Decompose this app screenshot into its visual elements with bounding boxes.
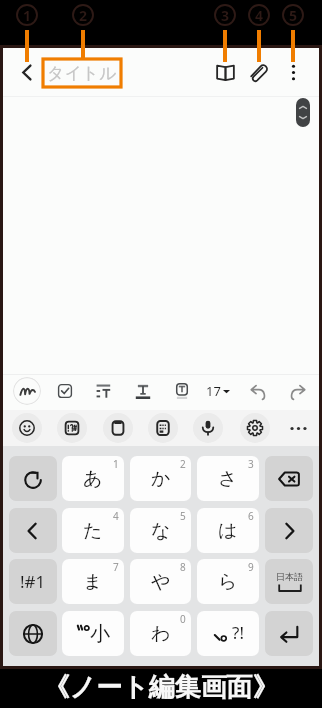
staticText: は bbox=[218, 519, 238, 543]
staticText: わ bbox=[151, 622, 171, 646]
staticText: ま bbox=[83, 570, 103, 594]
button[interactable]: Checklist bbox=[51, 377, 79, 405]
button[interactable]: Clipboard bbox=[103, 413, 133, 443]
staticText: ら bbox=[218, 570, 238, 594]
staticText: 7 bbox=[113, 560, 119, 574]
button[interactable]: del bbox=[265, 456, 313, 501]
staticText: 0 bbox=[180, 612, 186, 626]
staticText: 3 bbox=[221, 6, 230, 25]
button[interactable]: あ bbox=[62, 456, 124, 501]
button[interactable]: や bbox=[130, 559, 191, 604]
staticText: 1 bbox=[23, 6, 32, 25]
button[interactable]: な bbox=[130, 508, 191, 553]
staticText: 《ノート編集画面》 bbox=[43, 671, 279, 701]
button[interactable]: right bbox=[265, 508, 313, 553]
button[interactable]: Dictionary bbox=[208, 55, 242, 89]
staticText: 5 bbox=[180, 509, 186, 523]
button[interactable]: Settings bbox=[240, 413, 270, 443]
staticText: 2 bbox=[180, 457, 186, 471]
button[interactable]: More options bbox=[276, 55, 310, 89]
staticText: !#1 bbox=[20, 570, 46, 593]
staticText: 9 bbox=[248, 560, 254, 574]
staticText: な bbox=[151, 519, 171, 543]
staticText: 1 bbox=[113, 457, 119, 471]
button[interactable]: Back bbox=[9, 54, 45, 90]
button[interactable]: Handwriting bbox=[13, 377, 41, 405]
staticText: 日本語 bbox=[276, 571, 303, 582]
button[interactable]: undo bbox=[9, 456, 57, 501]
button[interactable]: タイトル bbox=[43, 59, 121, 87]
button[interactable]: は bbox=[197, 508, 259, 553]
staticText: 6 bbox=[248, 509, 254, 523]
staticText: 8 bbox=[180, 560, 186, 574]
button[interactable]: Attach file bbox=[242, 55, 276, 89]
staticText: 2 bbox=[79, 6, 88, 25]
button[interactable]: left bbox=[9, 508, 57, 553]
staticText: 小 bbox=[90, 621, 110, 646]
button[interactable]: Template bbox=[148, 413, 178, 443]
staticText: 4 bbox=[113, 509, 119, 523]
button[interactable]: dakuten bbox=[62, 611, 124, 656]
button[interactable]: !#1 bbox=[9, 559, 57, 604]
button[interactable]: Voice input bbox=[193, 413, 223, 443]
staticText: あ bbox=[83, 467, 103, 491]
button[interactable]: globe bbox=[9, 611, 57, 656]
button[interactable]: enter bbox=[265, 611, 313, 656]
button[interactable]: More bbox=[283, 413, 313, 443]
button[interactable]: Text style bbox=[168, 377, 196, 405]
button[interactable]: Text format bbox=[129, 377, 157, 405]
button[interactable]: わ bbox=[130, 611, 191, 656]
staticText: た bbox=[83, 519, 103, 543]
button[interactable]: さ bbox=[197, 456, 259, 501]
button[interactable]: punct bbox=[197, 611, 259, 656]
button[interactable]: Symbols bbox=[57, 413, 87, 443]
staticText: 5 bbox=[289, 6, 298, 25]
button[interactable]: Emoji bbox=[12, 413, 42, 443]
button[interactable]: た bbox=[62, 508, 124, 553]
staticText: 3 bbox=[248, 457, 254, 471]
staticText: さ bbox=[218, 467, 238, 491]
button[interactable]: 17 bbox=[198, 377, 238, 405]
staticText: や bbox=[151, 570, 171, 594]
button[interactable]: Indent bbox=[89, 377, 117, 405]
button[interactable]: space bbox=[265, 559, 313, 604]
button[interactable]: か bbox=[130, 456, 191, 501]
button[interactable]: Undo bbox=[244, 377, 272, 405]
staticText: ?! bbox=[232, 621, 244, 643]
staticText: 4 bbox=[255, 6, 264, 25]
staticText: 17 bbox=[206, 382, 221, 400]
staticText: タイトル bbox=[47, 63, 117, 84]
button[interactable]: ま bbox=[62, 559, 124, 604]
button[interactable]: Scroll position bbox=[296, 98, 310, 127]
staticText: か bbox=[151, 467, 171, 491]
button[interactable]: ら bbox=[197, 559, 259, 604]
button[interactable]: Redo bbox=[284, 377, 312, 405]
